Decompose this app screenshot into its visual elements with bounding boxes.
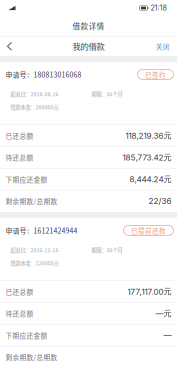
button[interactable]: 关闭 <box>156 36 177 56</box>
staticText: 已还总额 <box>5 131 33 140</box>
staticText: 下期应还金额 <box>5 330 47 340</box>
staticText: 待还总额 <box>5 153 33 162</box>
staticText: 关闭 <box>156 41 170 51</box>
staticText: 借款详情 <box>72 20 104 31</box>
staticText: 118,219.36元 <box>125 130 171 141</box>
staticText: —元 <box>155 308 171 318</box>
staticText: 借款本金：200000元 <box>10 103 58 111</box>
staticText: 下期应还金额 <box>5 174 47 184</box>
staticText: 申请号：180813016068 <box>5 69 81 79</box>
staticText: 期限：36个月 <box>91 90 122 98</box>
staticText: — <box>163 330 171 340</box>
staticText: 已提前还款 <box>131 226 166 235</box>
staticText: 我的借款 <box>72 40 104 52</box>
staticText: 申请号：16121424944 <box>5 225 77 235</box>
staticText: 已还总额 <box>5 287 33 296</box>
staticText: 22/36 <box>148 196 171 206</box>
button[interactable]: 返回 <box>0 36 19 56</box>
staticText: 21:18 <box>150 4 166 12</box>
staticText: 期限：36个月 <box>91 246 122 254</box>
staticText: 177,117.00元 <box>127 286 171 297</box>
staticText: 剩余期数/总期数 <box>5 196 57 206</box>
staticText: 待还总额 <box>5 309 33 318</box>
staticText: 借款本金：120000元 <box>10 259 58 267</box>
staticText: 起息日：2018-08-16 <box>10 90 58 98</box>
staticText: 已签约 <box>145 70 166 79</box>
staticText: 剩余期数/总期数 <box>5 352 57 362</box>
staticText: 185,773.42元 <box>122 152 171 162</box>
staticText: 8,444.24元 <box>129 174 171 184</box>
staticText: 起息日：2016-12-15 <box>10 246 58 254</box>
